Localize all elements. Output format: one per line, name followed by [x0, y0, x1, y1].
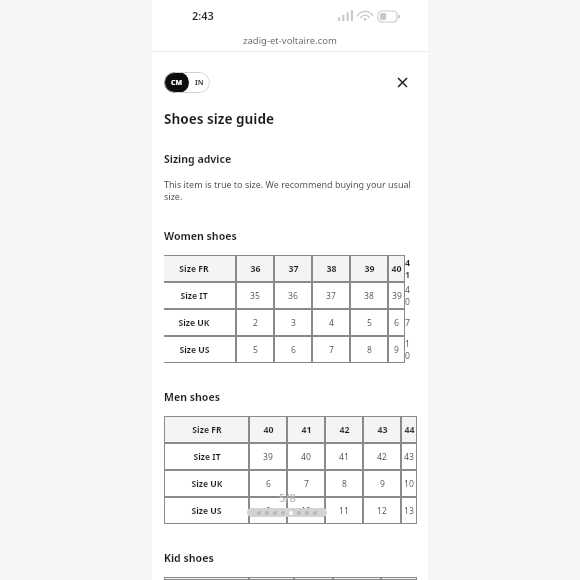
button[interactable]: CM	[164, 72, 210, 93]
staticText: 39	[263, 451, 273, 463]
staticText: 13	[404, 505, 414, 517]
staticText: Kid shoes	[164, 551, 214, 565]
staticText: Size IT	[193, 451, 221, 463]
staticText: 5/8	[279, 490, 296, 505]
staticText: Foot length	[182, 577, 232, 580]
staticText: 19.6cm	[342, 577, 372, 580]
staticText: Men shoes	[164, 390, 220, 404]
staticText: 5	[253, 344, 258, 356]
staticText: 36	[288, 290, 298, 302]
staticText: Women shoes	[164, 229, 237, 243]
staticText: 37	[288, 263, 299, 275]
staticText: 8	[342, 478, 347, 490]
staticText: Size FR	[179, 263, 209, 275]
staticText: 5	[367, 317, 372, 329]
staticText: 10	[404, 478, 414, 490]
staticText: Size FR	[192, 424, 222, 436]
staticText: 3	[291, 317, 296, 329]
staticText: 36	[250, 263, 261, 275]
staticText: 18.3cm	[257, 577, 287, 580]
staticText: Size IT	[180, 290, 208, 302]
button[interactable]: Size FR	[164, 255, 417, 364]
staticText: 2:43	[192, 8, 214, 23]
staticText: 2	[253, 317, 258, 329]
staticText: 40	[263, 424, 274, 436]
staticText: 20.3cm	[384, 577, 414, 580]
button[interactable]: Foot length	[164, 577, 417, 580]
staticText: 38	[364, 290, 374, 302]
staticText: 40	[391, 263, 402, 275]
staticText: zadig-et-voltaire.com	[243, 34, 337, 47]
staticText: Sizing advice	[164, 152, 232, 166]
staticText: 41	[339, 451, 349, 463]
staticText: 42	[339, 424, 350, 436]
staticText: 43	[377, 424, 388, 436]
staticText: Shoes size guide	[164, 110, 274, 128]
staticText: 9	[394, 344, 399, 356]
staticText: 7	[329, 344, 334, 356]
staticText: 6	[394, 317, 399, 329]
staticText: 37	[326, 290, 336, 302]
staticText: 40	[301, 451, 311, 463]
staticText: 38	[326, 263, 337, 275]
staticText: 7	[304, 478, 309, 490]
staticText: 8	[367, 344, 372, 356]
staticText: 35	[250, 290, 260, 302]
staticText: Size US	[179, 344, 210, 356]
staticText: 11	[339, 505, 349, 517]
staticText: 6	[266, 478, 271, 490]
staticText: 43	[404, 451, 414, 463]
staticText: 42	[377, 451, 387, 463]
staticText: IN	[195, 78, 204, 88]
staticText: Size US	[191, 505, 222, 517]
staticText: 4	[329, 317, 334, 329]
staticText: 44	[404, 424, 415, 436]
staticText: 41	[301, 424, 312, 436]
staticText: 9	[266, 505, 271, 517]
button[interactable]: Size FR	[164, 416, 417, 525]
button[interactable]: Close	[390, 70, 414, 94]
staticText: 39	[364, 263, 375, 275]
staticText: 19cm	[302, 577, 325, 580]
staticText: 6	[291, 344, 296, 356]
staticText: This item is true to size. We recommend …	[164, 178, 419, 203]
staticText: 39	[392, 290, 402, 302]
staticText: 10	[301, 505, 311, 517]
staticText: Size UK	[178, 317, 210, 329]
staticText: Size UK	[191, 478, 223, 490]
staticText: CM	[171, 78, 183, 88]
staticText: 12	[377, 505, 387, 517]
staticText: 9	[380, 478, 385, 490]
